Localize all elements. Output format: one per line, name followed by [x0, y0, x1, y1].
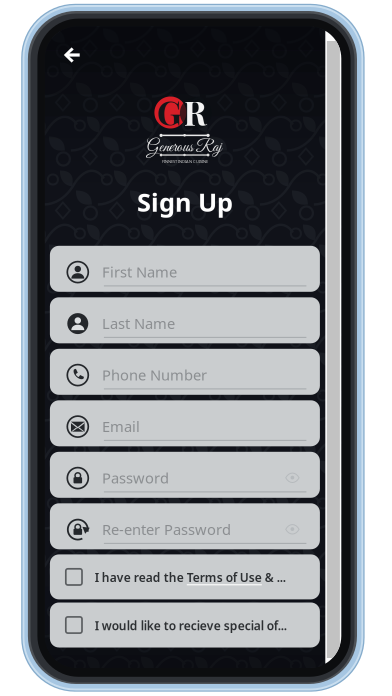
staticText: First Name	[102, 262, 177, 282]
button[interactable]: Re-enter Password	[50, 503, 320, 549]
button[interactable]: Back	[53, 40, 91, 70]
staticText: I would like to recieve special of...	[95, 617, 287, 633]
staticText: G	[157, 89, 182, 134]
button[interactable]: I would like to recieve special of...	[50, 602, 320, 647]
staticText: I have read the	[95, 569, 187, 585]
staticText: Last Name	[102, 314, 175, 333]
staticText: Password	[102, 468, 169, 488]
staticText: & ...	[262, 569, 286, 585]
button[interactable]: I have read the	[50, 554, 320, 599]
staticText: Generous Raj	[147, 137, 222, 158]
button[interactable]: Email	[50, 400, 320, 446]
button[interactable]: Phone Number	[50, 349, 320, 395]
button[interactable]: Password	[50, 452, 320, 498]
staticText: FINNEST INDIAN CUISINE	[162, 159, 208, 164]
staticText: Phone Number	[102, 365, 207, 385]
button[interactable]: Last Name	[50, 297, 320, 343]
staticText: R	[183, 90, 206, 134]
staticText: Sign Up	[137, 185, 233, 219]
staticText: Re-enter Password	[102, 520, 231, 539]
staticText: Terms of Use	[187, 569, 262, 585]
button[interactable]: First Name	[50, 246, 320, 292]
staticText: Email	[102, 417, 140, 436]
